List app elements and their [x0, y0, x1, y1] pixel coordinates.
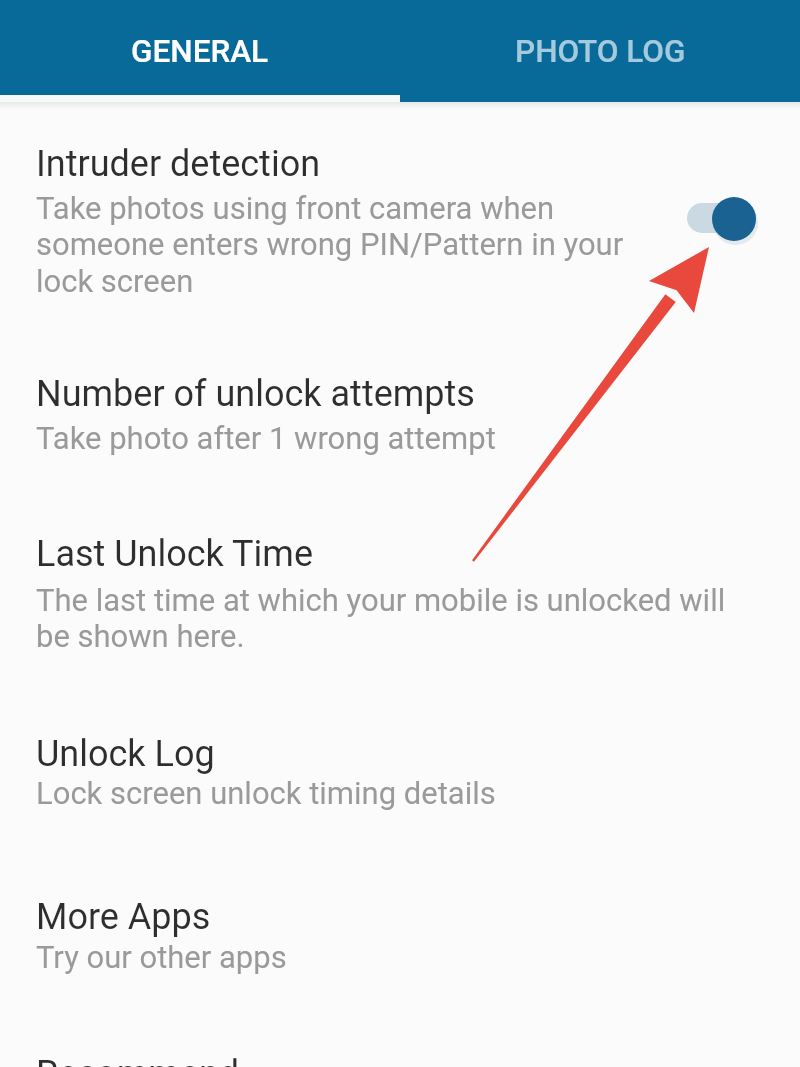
staticText: Recommend [36, 1053, 240, 1067]
button[interactable]: GENERAL [0, 0, 400, 102]
staticText: The last time at which your mobile is un… [36, 582, 726, 655]
button[interactable]: Intruder detection [0, 130, 800, 320]
button[interactable]: Unlock Log [0, 720, 800, 825]
staticText: Unlock Log [36, 733, 215, 775]
staticText: Take photo after 1 wrong attempt [36, 420, 496, 456]
button[interactable]: Number of unlock attempts [0, 360, 800, 470]
staticText: Intruder detection [36, 143, 321, 185]
staticText: Try our other apps [36, 939, 287, 975]
staticText: GENERAL [131, 33, 269, 70]
staticText: PHOTO LOG [515, 33, 686, 70]
button[interactable]: Recommend [0, 1040, 800, 1067]
staticText: Last Unlock Time [36, 533, 313, 575]
button[interactable]: More Apps [0, 885, 800, 990]
staticText: Lock screen unlock timing details [36, 775, 496, 811]
button[interactable]: Last Unlock Time [0, 520, 800, 665]
staticText: Take photos using front camera when some… [36, 190, 624, 300]
staticText: More Apps [36, 896, 211, 938]
button[interactable] [676, 186, 766, 252]
button[interactable]: PHOTO LOG [400, 0, 800, 102]
staticText: Number of unlock attempts [36, 373, 475, 415]
